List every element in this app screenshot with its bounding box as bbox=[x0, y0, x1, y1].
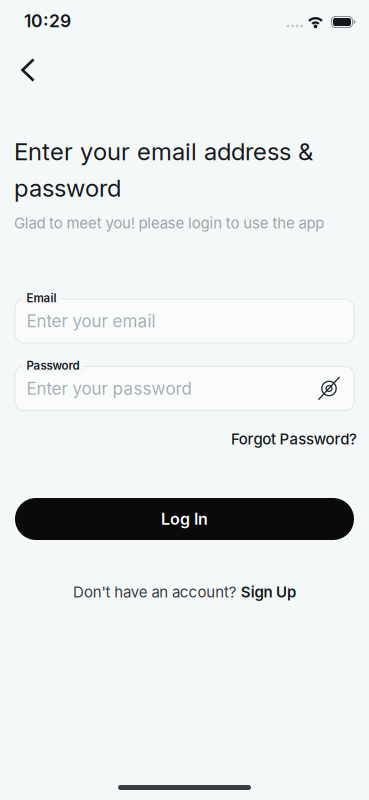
staticText: Email bbox=[26, 291, 56, 305]
staticText: Enter your password bbox=[26, 378, 191, 399]
staticText: Log In bbox=[161, 509, 208, 529]
button[interactable]: Show password bbox=[318, 376, 354, 400]
staticText: 10:29 bbox=[24, 10, 71, 32]
staticText: Enter your email address & password bbox=[14, 137, 313, 203]
staticText: Forgot Password? bbox=[231, 430, 357, 448]
staticText: Don't have an account? bbox=[73, 583, 237, 601]
staticText: Enter your email bbox=[26, 311, 155, 331]
button[interactable]: Sign Up bbox=[241, 583, 296, 601]
staticText: Sign Up bbox=[241, 583, 296, 601]
button[interactable]: Forgot Password? bbox=[231, 430, 357, 448]
staticText: Password bbox=[26, 358, 79, 372]
button[interactable]: Back bbox=[21, 58, 35, 82]
button[interactable]: Log In bbox=[15, 498, 354, 540]
staticText: Glad to meet you! please login to use th… bbox=[14, 214, 324, 232]
